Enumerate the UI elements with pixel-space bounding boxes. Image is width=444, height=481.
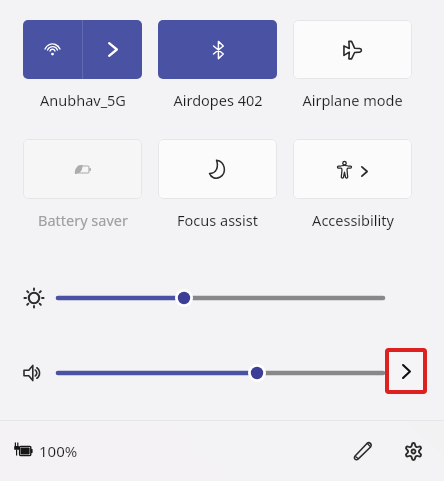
staticText: 100% bbox=[39, 441, 78, 461]
button[interactable]: Settings bbox=[391, 429, 435, 473]
button[interactable]: Battery saver bbox=[23, 139, 142, 199]
button[interactable]: 100% bbox=[14, 441, 78, 461]
button[interactable]: Wi-Fi bbox=[23, 20, 82, 79]
staticText: Accessibility bbox=[312, 210, 394, 230]
button[interactable]: Manage Wi-Fi connections bbox=[83, 20, 142, 79]
button[interactable]: Focus assist bbox=[158, 139, 277, 199]
staticText: Airplane mode bbox=[302, 90, 403, 110]
button[interactable]: Bluetooth bbox=[158, 20, 277, 79]
button[interactable]: Edit quick settings bbox=[341, 429, 385, 473]
staticText: Focus assist bbox=[177, 210, 258, 230]
staticText: Battery saver bbox=[38, 210, 128, 230]
button[interactable]: Airplane mode bbox=[293, 20, 412, 79]
button[interactable]: Select sound output bbox=[385, 348, 427, 394]
staticText: Airdopes 402 bbox=[173, 90, 263, 110]
button[interactable]: Accessibility bbox=[293, 139, 412, 199]
staticText: Anubhav_5G bbox=[40, 90, 126, 110]
